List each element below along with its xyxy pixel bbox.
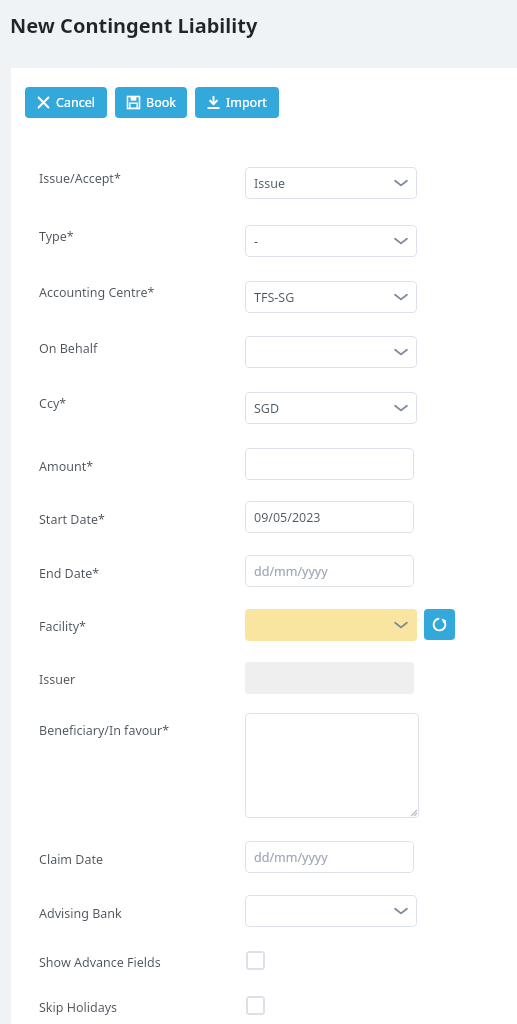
button[interactable]: - [245,225,417,257]
staticText: Skip Holidays [39,999,118,1016]
button[interactable]: 09/05/2023 [245,501,414,533]
button[interactable]: Issue [245,167,417,199]
staticText: On Behalf [39,340,98,357]
staticText: TFS-SG [254,289,295,306]
staticText: Accounting Centre* [39,284,155,301]
button[interactable]: dd/mm/yyyy [245,555,414,587]
button[interactable]: Book [115,87,187,118]
staticText: New Contingent Liability [10,12,258,39]
button[interactable]: Cancel [25,87,107,118]
button[interactable]: Show Advance Fields [246,951,265,970]
button[interactable] [245,336,417,368]
button[interactable] [245,448,414,480]
staticText: Book [146,94,176,111]
button[interactable]: SGD [245,392,417,424]
staticText: Amount* [39,458,94,475]
button[interactable]: TFS-SG [245,281,417,313]
button[interactable]: Refresh facility [424,609,455,640]
staticText: - [254,233,259,250]
button[interactable] [245,895,417,927]
staticText: Show Advance Fields [39,954,161,971]
button[interactable] [245,609,417,641]
staticText: Beneficiary/In favour* [39,722,170,739]
staticText: End Date* [39,565,100,582]
staticText: Issuer [39,671,76,688]
staticText: Issue [254,175,285,192]
button[interactable]: Skip Holidays [246,996,265,1015]
staticText: Claim Date [39,851,104,868]
staticText: Advising Bank [39,905,122,922]
staticText: SGD [254,400,280,417]
staticText: Import [226,94,267,111]
button[interactable] [245,713,419,818]
staticText: Type* [39,228,74,245]
button[interactable]: dd/mm/yyyy [245,841,414,873]
button[interactable]: Import [195,87,279,118]
staticText: Cancel [56,94,95,111]
staticText: dd/mm/yyyy [254,849,328,866]
staticText: Ccy* [39,395,67,412]
staticText: Facility* [39,618,86,635]
staticText: Issue/Accept* [39,170,121,187]
staticText: dd/mm/yyyy [254,563,328,580]
staticText: 09/05/2023 [254,509,321,526]
staticText: Start Date* [39,511,105,528]
